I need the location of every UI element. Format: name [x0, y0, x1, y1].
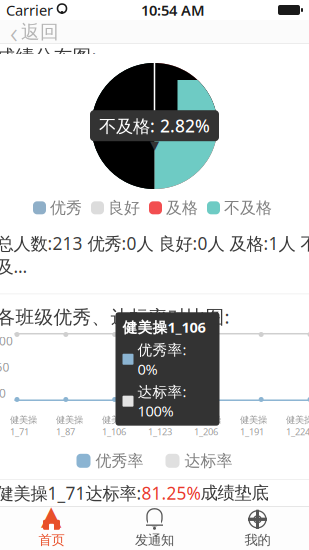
staticText: 健美操1_106: [102, 414, 129, 438]
staticText: 首页: [38, 532, 64, 548]
staticText: 良好: [108, 198, 140, 218]
staticText: 健美操1_71: [10, 414, 37, 438]
staticText: 达标率: [184, 451, 232, 471]
button[interactable]: ▲: [0, 506, 103, 550]
staticText: ▲: [41, 500, 62, 530]
staticText: 不及格: [224, 198, 272, 218]
staticText: 各班级优秀、达标率对比图:: [0, 304, 229, 329]
staticText: 成绩分布图:: [0, 44, 96, 68]
staticText: 及格: [166, 198, 198, 218]
staticText: 发通知: [135, 532, 174, 548]
staticText: 健美操1_191: [240, 414, 267, 438]
staticText: ‹: [10, 12, 18, 51]
staticText: 成绩垫底: [200, 482, 268, 504]
staticText: 健美操1_71达标率:: [0, 481, 141, 504]
staticText: ▼: [150, 138, 159, 152]
button[interactable]: ‹: [2, 20, 67, 44]
staticText: 返回: [21, 20, 59, 43]
staticText: 优秀率: 0%: [137, 340, 186, 379]
staticText: [51, 0, 57, 25]
staticText: 总人数:213 优秀:0人 良好:0人 及格:1人 不及…: [0, 232, 309, 278]
staticText: 不及格: 2.82%: [99, 114, 210, 137]
staticText: 优秀: [50, 198, 82, 218]
staticText: 50: [0, 359, 9, 375]
staticText: 优秀率: [95, 451, 143, 471]
staticText: 100: [0, 333, 13, 349]
staticText: 健美操1_224: [286, 414, 309, 438]
staticText: 健美操1_106: [122, 317, 205, 337]
button[interactable]: 我的: [206, 506, 309, 550]
staticText: 10:54 AM: [141, 0, 205, 20]
button[interactable]: 发通知: [103, 506, 206, 550]
staticText: 健美操1_206: [194, 414, 221, 438]
staticText: 健美操1_123: [148, 414, 175, 438]
staticText: 81.25%: [141, 481, 200, 504]
staticText: 健美操1_87: [56, 414, 83, 438]
staticText: Carrier: [6, 0, 53, 20]
staticText: 0: [0, 385, 6, 401]
staticText: 达标率: 100%: [137, 382, 186, 421]
staticText: 我的: [244, 532, 270, 548]
